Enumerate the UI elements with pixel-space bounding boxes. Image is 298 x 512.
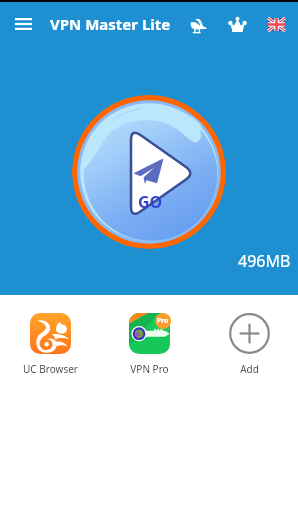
- staticText: UC Browser: [23, 362, 78, 376]
- button[interactable]: Connect: [72, 95, 226, 249]
- staticText: VPN Pro: [130, 362, 169, 376]
- button[interactable]: Region: [259, 7, 294, 42]
- staticText: Pro: [157, 316, 169, 326]
- staticText: VPN Master Lite: [50, 14, 171, 34]
- staticText: 496MB: [238, 250, 291, 272]
- button[interactable]: Menu: [3, 4, 43, 44]
- staticText: Add: [240, 362, 259, 376]
- button[interactable]: Boost: [181, 7, 216, 42]
- button[interactable]: Pro: [103, 313, 195, 376]
- button[interactable]: Premium: [220, 7, 255, 42]
- button[interactable]: UC Browser: [4, 313, 96, 376]
- staticText: GO: [138, 191, 163, 213]
- button[interactable]: Add: [203, 313, 295, 376]
